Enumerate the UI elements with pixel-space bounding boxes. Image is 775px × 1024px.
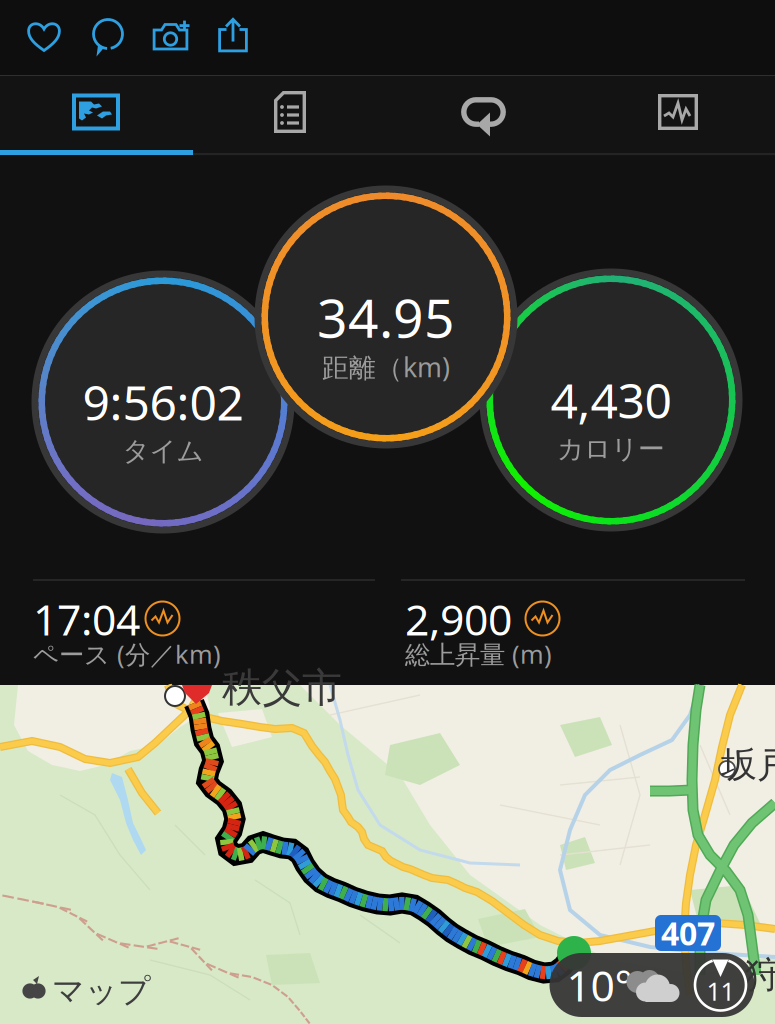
staticText: 10° bbox=[566, 957, 632, 1013]
staticText: 坂戸 bbox=[721, 743, 775, 787]
staticText: マップ bbox=[52, 971, 151, 1011]
staticText: 407 bbox=[661, 912, 715, 954]
staticText: 2,900 bbox=[405, 591, 512, 647]
staticText: 総上昇量 (m) bbox=[405, 637, 552, 671]
staticText: タイム bbox=[122, 435, 203, 467]
staticText: 秩父市 bbox=[222, 663, 342, 712]
staticText: 9:56:02 bbox=[82, 370, 243, 434]
button[interactable]: Like bbox=[13, 5, 75, 67]
staticText: 34.95 bbox=[317, 282, 455, 352]
staticText: 4,430 bbox=[550, 368, 671, 432]
staticText: 狩 bbox=[745, 953, 775, 997]
button[interactable]: Splits bbox=[387, 77, 580, 147]
staticText: カロリー bbox=[557, 433, 665, 465]
button[interactable]: Add photo bbox=[141, 4, 203, 66]
staticText: 距離（km) bbox=[322, 349, 450, 385]
button[interactable]: Share bbox=[202, 4, 264, 66]
button[interactable]: Comment bbox=[77, 5, 139, 67]
staticText: ペース (分／km) bbox=[33, 637, 221, 671]
button[interactable]: Map bbox=[0, 77, 192, 147]
staticText: 17:04 bbox=[33, 591, 140, 647]
staticText: 11 bbox=[706, 974, 734, 1008]
button[interactable]: Graphs bbox=[581, 77, 774, 147]
button[interactable]: Details bbox=[193, 77, 386, 147]
